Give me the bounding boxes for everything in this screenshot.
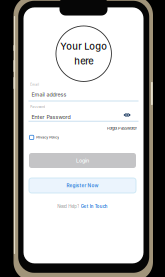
staticText: Need Help? bbox=[57, 204, 79, 209]
staticText: here bbox=[74, 55, 93, 67]
staticText: Email bbox=[30, 83, 39, 86]
button[interactable]: Login bbox=[29, 153, 136, 168]
button[interactable]: Get In Touch bbox=[81, 204, 108, 209]
staticText: Login bbox=[76, 157, 89, 164]
staticText: Your Logo bbox=[60, 41, 107, 52]
staticText: Register Now bbox=[66, 183, 98, 188]
button[interactable]: Forgot Password? bbox=[105, 125, 137, 131]
staticText: Email address bbox=[31, 91, 66, 98]
staticText: Forgot Password? bbox=[107, 126, 137, 131]
staticText: Password bbox=[30, 105, 45, 109]
staticText: Get In Touch bbox=[81, 204, 108, 209]
staticText: Privacy Policy bbox=[36, 135, 59, 139]
button[interactable]: Privacy Policy bbox=[29, 134, 59, 140]
button[interactable]: Show password bbox=[123, 111, 131, 119]
button[interactable]: Register Now bbox=[29, 178, 136, 193]
staticText: Enter Password bbox=[31, 114, 70, 120]
